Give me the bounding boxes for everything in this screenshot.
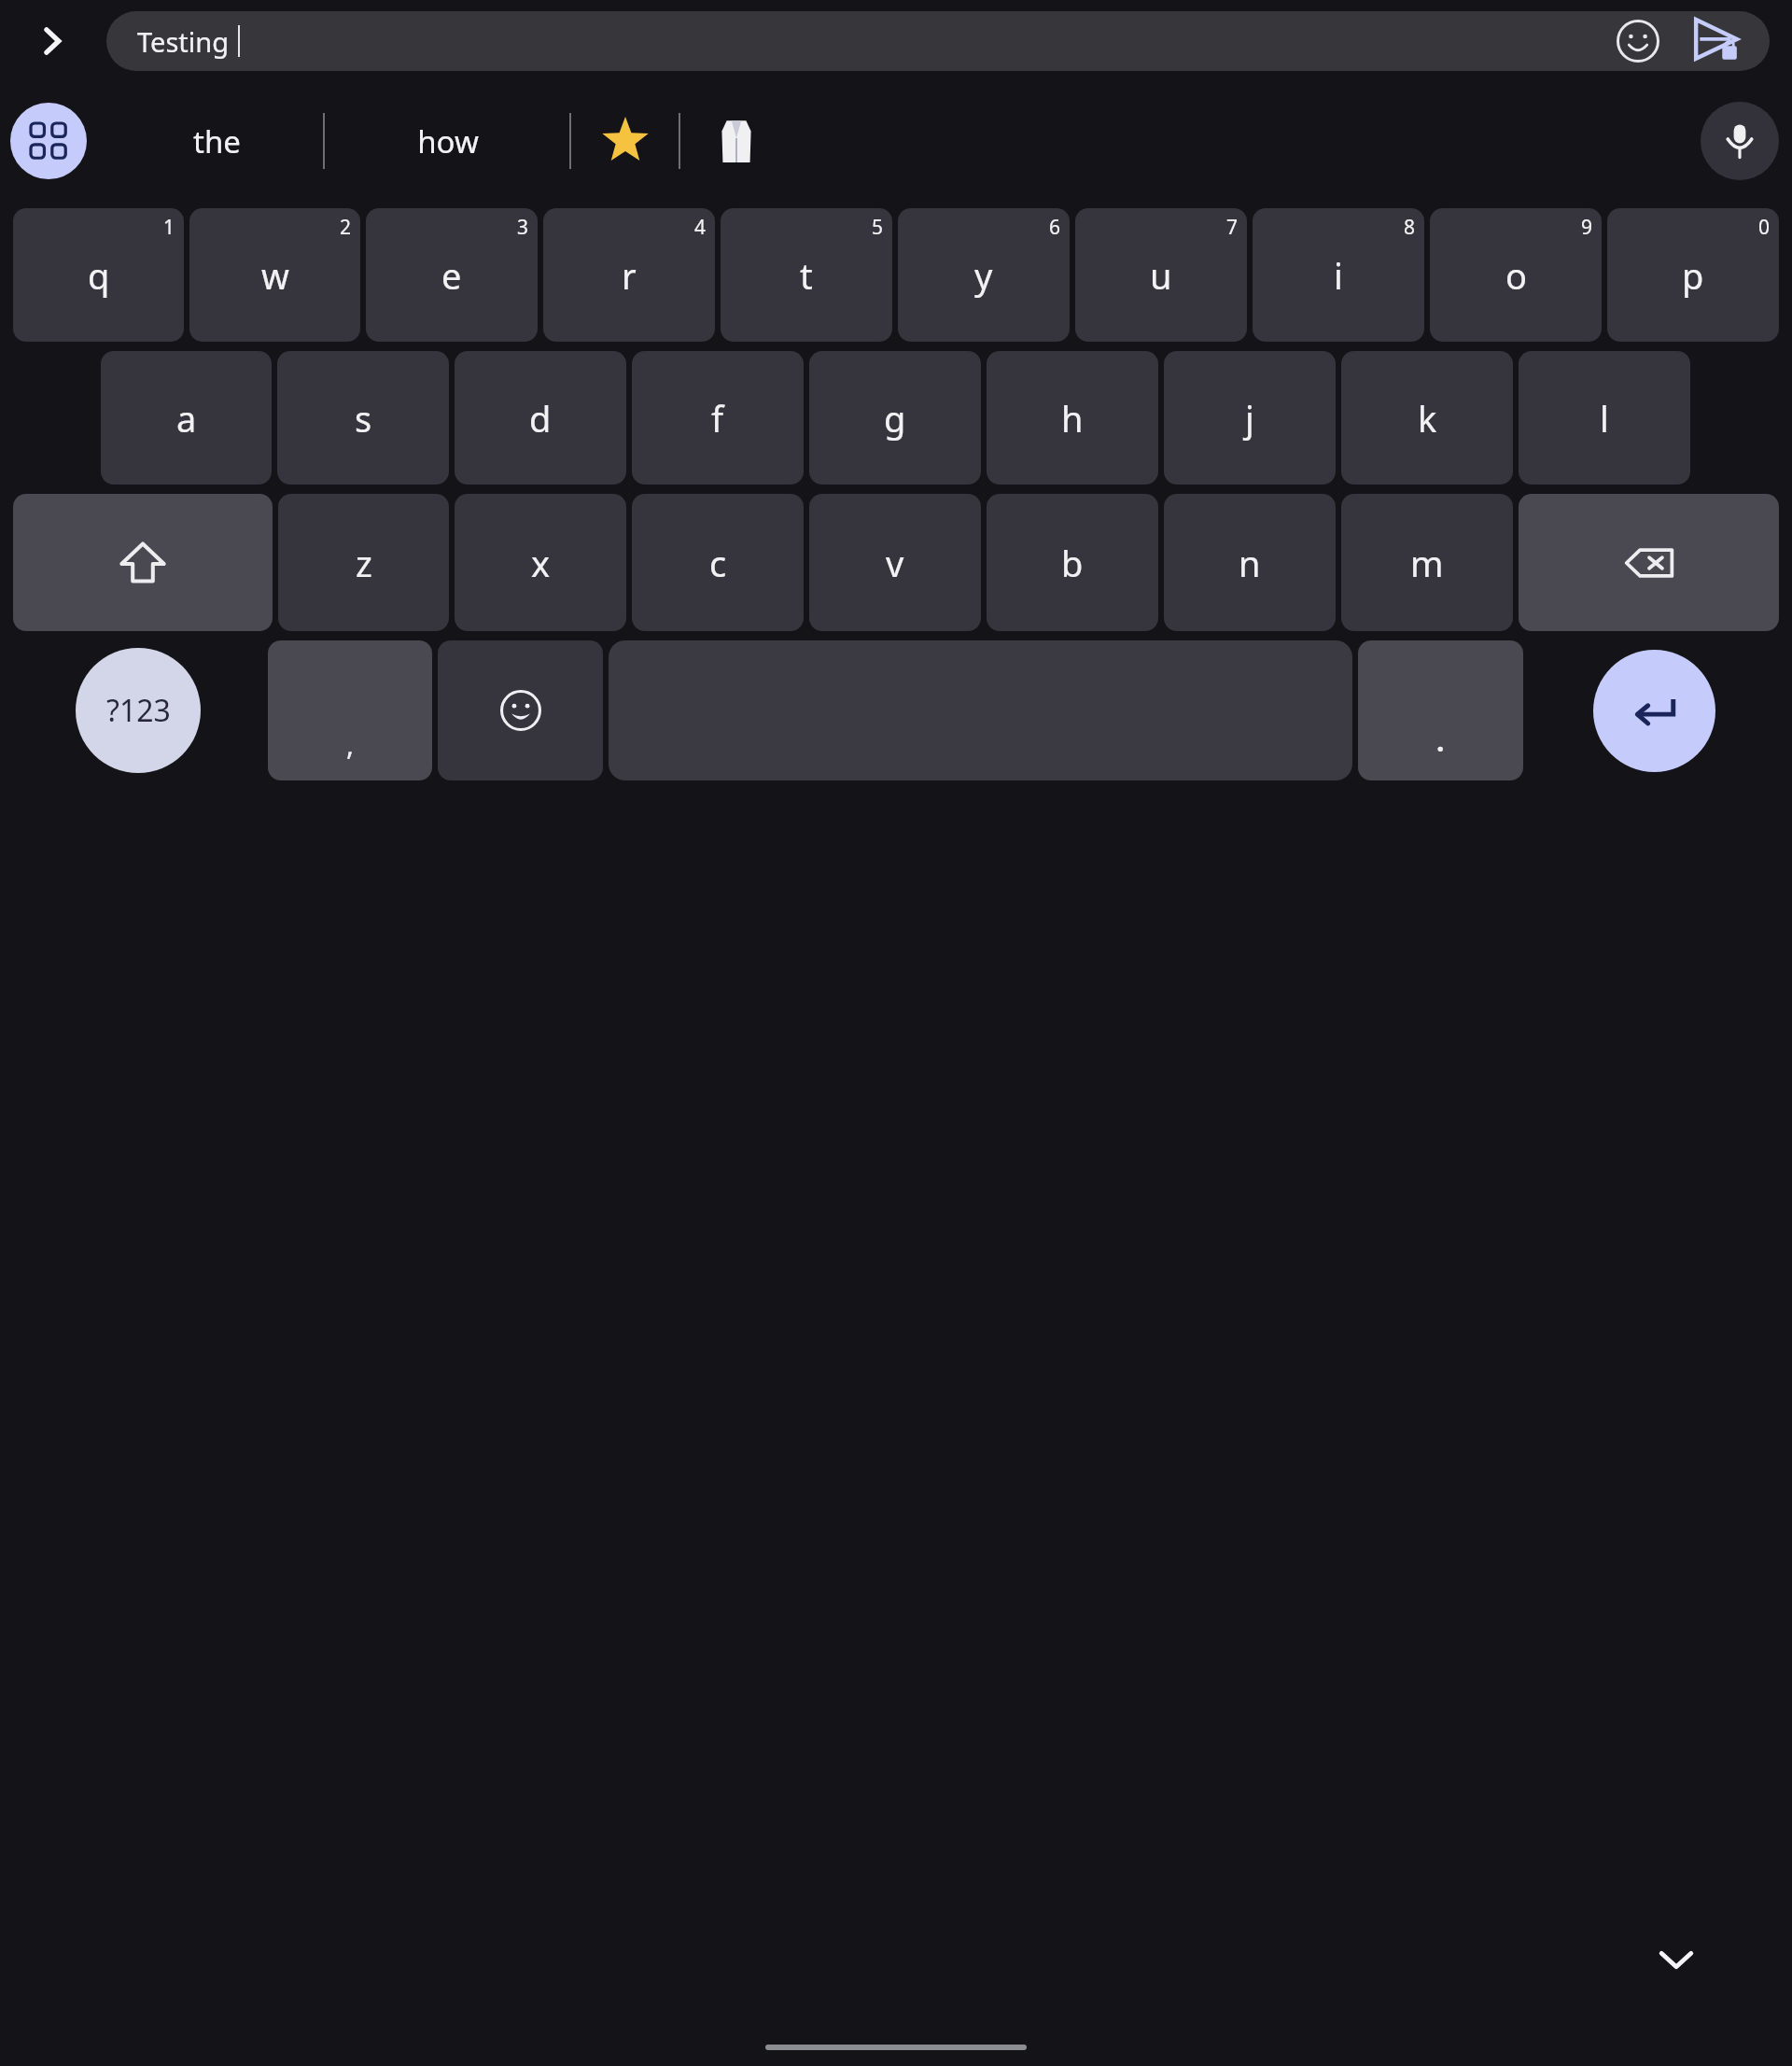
staticText: h (1061, 394, 1084, 443)
button[interactable]: Lab coat sticker (680, 82, 792, 200)
staticText: q (88, 251, 110, 300)
staticText: 4 (694, 214, 707, 241)
button[interactable]: g (809, 351, 981, 485)
button[interactable]: p (1607, 208, 1779, 342)
staticText: ?123 (106, 690, 171, 731)
button[interactable]: Enter (1593, 650, 1715, 772)
button[interactable]: Backspace (1519, 494, 1779, 631)
button[interactable]: x (455, 494, 626, 631)
staticText: k (1418, 394, 1437, 443)
staticText: 5 (872, 214, 884, 241)
button[interactable]: v (809, 494, 981, 631)
staticText: b (1061, 539, 1084, 587)
button[interactable]: f (632, 351, 804, 485)
staticText: d (529, 394, 552, 443)
staticText: 2 (340, 214, 352, 241)
staticText: 9 (1581, 214, 1593, 241)
staticText: p (1682, 251, 1704, 300)
staticText: 8 (1404, 214, 1416, 241)
staticText: m (1410, 539, 1444, 587)
button[interactable]: the (112, 82, 322, 200)
button[interactable]: b (987, 494, 1158, 631)
staticText: n (1239, 539, 1261, 587)
staticText: u (1150, 251, 1172, 300)
button[interactable]: q (13, 208, 184, 342)
staticText: , (346, 725, 355, 764)
staticText: l (1600, 394, 1609, 443)
button[interactable]: k (1341, 351, 1513, 485)
staticText: z (356, 539, 372, 587)
button[interactable]: j (1164, 351, 1336, 485)
button[interactable]: r (543, 208, 715, 342)
button[interactable]: t (721, 208, 892, 342)
staticText: a (176, 394, 197, 443)
staticText: t (800, 251, 813, 300)
button[interactable]: Testing (106, 11, 1770, 71)
button[interactable]: Hide keyboard (1643, 1926, 1710, 1993)
button[interactable]: h (987, 351, 1158, 485)
button[interactable]: Send (1686, 11, 1747, 71)
staticText: g (884, 394, 906, 443)
button[interactable]: Expand (21, 9, 84, 73)
staticText: x (531, 539, 551, 587)
button[interactable]: ?123 (76, 648, 201, 773)
button[interactable]: z (278, 494, 449, 631)
button[interactable]: Voice input (1701, 102, 1779, 180)
staticText: i (1334, 251, 1343, 300)
staticText: Testing (137, 23, 230, 60)
staticText: j (1245, 394, 1254, 443)
button[interactable]: Period (1358, 640, 1523, 780)
staticText: w (261, 251, 289, 300)
button[interactable]: Comma (268, 640, 432, 780)
button[interactable]: how (327, 82, 569, 200)
staticText: c (709, 539, 727, 587)
staticText: s (355, 394, 372, 443)
button[interactable]: Shift (13, 494, 273, 631)
button[interactable]: o (1430, 208, 1602, 342)
button[interactable]: i (1253, 208, 1424, 342)
button[interactable]: d (455, 351, 626, 485)
button[interactable]: Emoji (1609, 12, 1667, 70)
staticText: 1 (163, 214, 175, 241)
staticText: r (622, 251, 637, 300)
button[interactable]: Keyboard menu (10, 103, 87, 179)
staticText: y (974, 251, 993, 300)
button[interactable]: n (1164, 494, 1336, 631)
button[interactable]: Emoji keyboard (438, 640, 603, 780)
staticText: 7 (1226, 214, 1239, 241)
button[interactable]: y (898, 208, 1070, 342)
staticText: f (711, 394, 724, 443)
staticText: 3 (517, 214, 529, 241)
staticText: v (886, 539, 904, 587)
button[interactable]: l (1519, 351, 1690, 485)
button[interactable]: w (189, 208, 360, 342)
staticText: . (1436, 722, 1445, 760)
button[interactable]: Star sticker (571, 82, 679, 200)
staticText: o (1505, 251, 1527, 300)
button[interactable]: e (366, 208, 538, 342)
button[interactable]: m (1341, 494, 1513, 631)
staticText: how (417, 120, 479, 162)
button[interactable]: a (101, 351, 272, 485)
button[interactable]: Space (609, 640, 1352, 780)
staticText: 6 (1049, 214, 1061, 241)
staticText: e (441, 251, 462, 300)
staticText: the (193, 120, 241, 162)
button[interactable]: s (277, 351, 449, 485)
button[interactable]: u (1075, 208, 1247, 342)
staticText: 0 (1758, 214, 1771, 241)
button[interactable]: c (632, 494, 804, 631)
